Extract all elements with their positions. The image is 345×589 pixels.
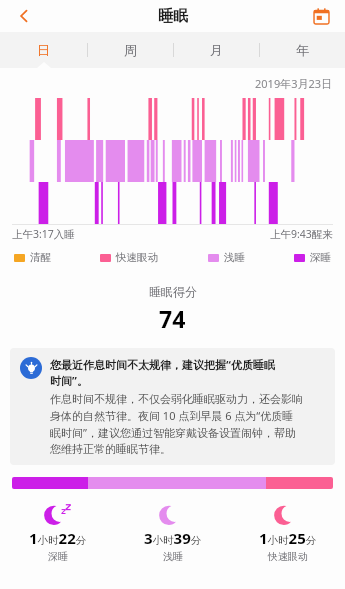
staticText: 74	[159, 303, 186, 334]
staticText: 浅睡	[163, 550, 183, 563]
staticText: 2019年3月23日	[255, 76, 333, 91]
staticText: 浅睡	[224, 251, 245, 264]
staticText: 1小时22分	[29, 528, 87, 548]
staticText: 3小时39分	[144, 528, 202, 548]
button[interactable]: 1小时22分	[0, 503, 115, 563]
staticText: 上午3:17入睡	[12, 227, 75, 241]
staticText: 快速眼动	[268, 550, 308, 563]
staticText: 睡眠得分	[149, 284, 197, 299]
staticText: 日	[37, 42, 50, 58]
button[interactable]: 1小时25分	[230, 503, 345, 563]
staticText: 睡眠	[158, 7, 188, 26]
button[interactable]: 月	[173, 32, 259, 68]
button[interactable]: 3小时39分	[115, 503, 230, 563]
staticText: 月	[210, 42, 223, 58]
staticText: 快速眼动	[116, 251, 158, 264]
staticText: 年	[296, 42, 309, 58]
staticText: 深睡	[48, 550, 68, 563]
staticText: 作息时间不规律，不仅会弱化睡眠驱动力，还会影响 身体的自然节律。夜间 10 点到…	[50, 392, 303, 456]
staticText: 深睡	[310, 251, 331, 264]
staticText: 1小时25分	[259, 528, 317, 548]
button[interactable]: Calendar	[305, 0, 337, 32]
button[interactable]: 日	[0, 32, 87, 68]
staticText: 上午9:43醒来	[270, 227, 333, 241]
button[interactable]: 周	[87, 32, 173, 68]
staticText: 清醒	[30, 251, 51, 264]
staticText: 周	[124, 42, 137, 58]
button[interactable]: Back	[8, 0, 40, 32]
button[interactable]: 年	[259, 32, 345, 68]
staticText: 您最近作息时间不太规律，建议把握“优质睡眠 时间”。	[50, 357, 275, 388]
button[interactable]: 您最近作息时间不太规律，建议把握“优质睡眠 时间”。	[10, 348, 335, 465]
